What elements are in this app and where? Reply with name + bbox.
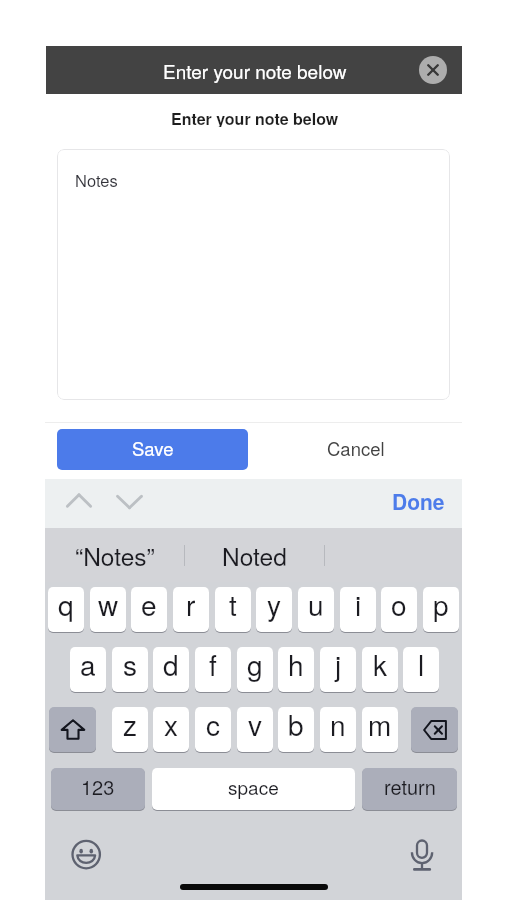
button[interactable]: 123 [51,768,145,810]
staticText: t [229,587,237,624]
button[interactable]: Notes [57,149,450,400]
button[interactable]: q [48,587,84,632]
button[interactable]: x [153,707,189,752]
button[interactable]: “Notes” [65,528,165,582]
staticText: e [141,587,157,624]
staticText: s [123,647,138,684]
button[interactable]: Shift [49,707,96,752]
button[interactable]: h [278,647,314,692]
button[interactable]: a [70,647,106,692]
staticText: Enter your note below [163,57,347,84]
staticText: w [98,587,119,624]
button[interactable]: v [237,707,273,752]
staticText: x [164,707,179,744]
button[interactable]: d [153,647,189,692]
staticText: c [206,707,221,744]
staticText: z [123,707,138,744]
button[interactable]: m [362,707,398,752]
button[interactable]: t [215,587,251,632]
button[interactable]: w [90,587,126,632]
button[interactable]: l [403,647,439,692]
button[interactable]: k [362,647,398,692]
staticText: return [384,772,436,801]
button[interactable]: r [173,587,209,632]
button[interactable]: p [423,587,459,632]
button[interactable]: s [112,647,148,692]
button[interactable]: Next field [115,488,144,517]
button[interactable]: Done [385,489,451,519]
staticText: f [209,647,217,684]
button[interactable]: j [320,647,356,692]
staticText: Enter your note below [171,107,339,127]
staticText: Noted [222,538,287,573]
staticText: m [368,707,392,744]
staticText: Save [132,435,174,461]
button[interactable]: z [112,707,148,752]
button[interactable]: Noted [204,528,304,582]
staticText: k [373,647,388,684]
staticText: space [228,773,279,800]
staticText: y [267,587,282,624]
staticText: “Notes” [75,538,155,573]
staticText: r [186,587,196,624]
staticText: Done [392,486,445,516]
button[interactable]: Emoji [72,840,101,869]
staticText: 123 [81,772,115,801]
staticText: o [391,587,407,624]
staticText: j [335,647,342,684]
button[interactable]: Backspace [411,707,458,752]
button[interactable]: n [320,707,356,752]
staticText: p [433,587,449,624]
staticText: q [58,587,74,624]
staticText: b [288,707,304,744]
button[interactable]: Cancel [253,429,458,470]
staticText: v [248,707,263,744]
staticText: d [163,647,179,684]
staticText: n [330,707,346,744]
button[interactable]: u [298,587,334,632]
button[interactable]: space [152,768,355,810]
staticText: g [247,647,263,684]
button[interactable]: return [362,768,457,810]
button[interactable]: i [340,587,376,632]
button[interactable]: b [278,707,314,752]
button[interactable]: e [131,587,167,632]
button[interactable]: y [256,587,292,632]
staticText: Cancel [327,435,385,461]
button[interactable]: o [381,587,417,632]
staticText: h [288,647,304,684]
staticText: l [418,647,425,684]
button[interactable]: Previous field [65,488,93,516]
staticText: a [80,647,96,684]
button[interactable]: Save [57,429,248,470]
button[interactable]: c [195,707,231,752]
staticText: i [355,587,362,624]
button[interactable]: Close [419,56,447,84]
button[interactable]: Dictation [406,837,436,867]
staticText: Notes [75,168,118,192]
button[interactable]: Enter your note below [46,46,462,94]
button[interactable]: g [237,647,273,692]
staticText: u [308,587,324,624]
button[interactable]: f [195,647,231,692]
